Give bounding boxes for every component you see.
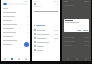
- button[interactable]: [34, 36, 58, 40]
- button[interactable]: Tab 2: [73, 56, 80, 61]
- button[interactable]: [3, 38, 28, 42]
- button[interactable]: Tab 3: [82, 56, 89, 61]
- button[interactable]: Add: [24, 42, 29, 47]
- button[interactable]: [34, 40, 58, 44]
- button[interactable]: [64, 35, 89, 39]
- button[interactable]: Tab 4: [23, 56, 29, 61]
- button[interactable]: Tab 1: [2, 56, 8, 61]
- button[interactable]: Tab 3: [16, 56, 22, 61]
- button[interactable]: [64, 39, 89, 43]
- button[interactable]: [3, 22, 28, 26]
- button[interactable]: [3, 34, 28, 38]
- button[interactable]: [34, 48, 58, 52]
- button[interactable]: [64, 43, 89, 47]
- button[interactable]: [3, 14, 28, 18]
- button[interactable]: [3, 18, 28, 22]
- button[interactable]: [3, 3, 7, 5]
- button[interactable]: [3, 10, 28, 14]
- button[interactable]: [64, 19, 89, 32]
- button[interactable]: [34, 32, 58, 36]
- button[interactable]: Tab 2: [9, 56, 15, 61]
- button[interactable]: [34, 44, 58, 48]
- button[interactable]: Tab 1: [64, 56, 71, 61]
- button[interactable]: [3, 42, 28, 46]
- button[interactable]: [34, 28, 58, 32]
- button[interactable]: [3, 26, 28, 30]
- button[interactable]: [3, 30, 28, 34]
- button[interactable]: [3, 6, 28, 10]
